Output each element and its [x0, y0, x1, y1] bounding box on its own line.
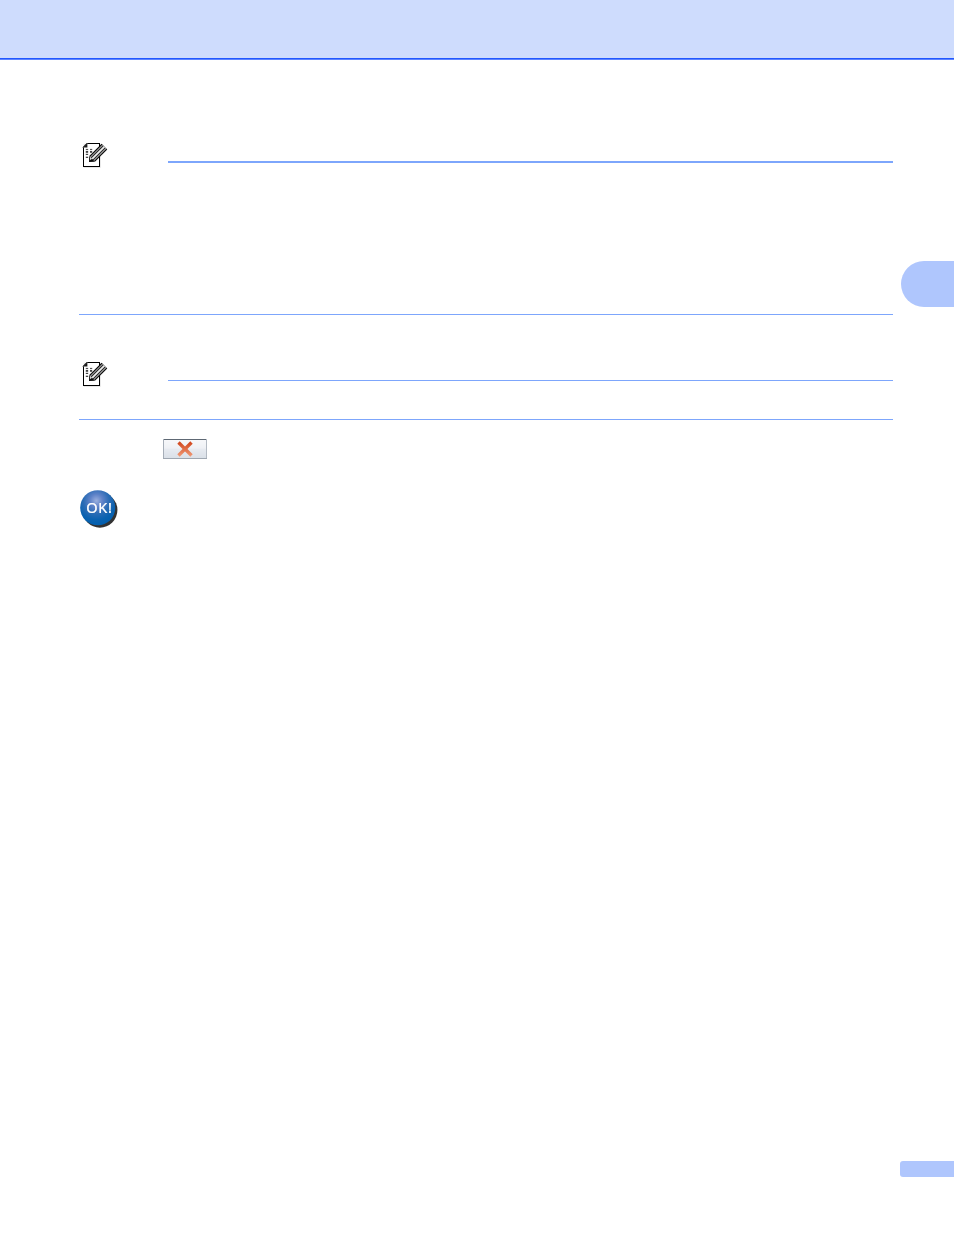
button[interactable]: OK [80, 490, 119, 529]
button[interactable]: Page tab [900, 1161, 954, 1177]
button[interactable]: Missing image [163, 439, 207, 459]
button[interactable]: Note [79, 359, 893, 417]
staticText: OK! [86, 497, 113, 517]
button[interactable]: Chapter tab [901, 261, 954, 307]
button[interactable]: Note [79, 140, 893, 312]
